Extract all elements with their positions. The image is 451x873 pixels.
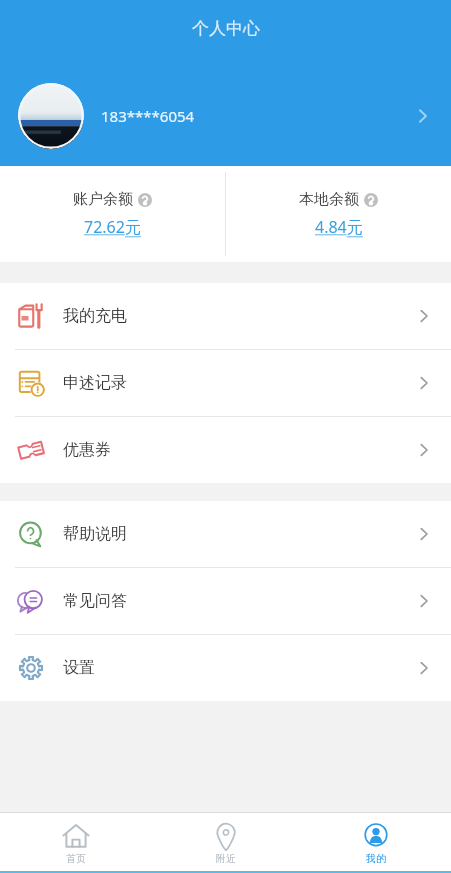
staticText: 首页 [66, 852, 86, 865]
staticText: 常见问答 [63, 591, 127, 611]
button[interactable]: 设置 [0, 635, 451, 701]
other: Profile details [411, 105, 433, 127]
staticText: 72.62元 [84, 216, 141, 238]
staticText: 优惠券 [63, 440, 111, 460]
button[interactable]: 附近 [151, 812, 301, 873]
button[interactable]: 常见问答 [0, 568, 451, 634]
button[interactable]: 183****6054 [0, 66, 451, 166]
button[interactable]: 帮助说明 [0, 501, 451, 567]
staticText: 本地余额 [299, 190, 359, 209]
button[interactable]: 首页 [0, 812, 151, 873]
button[interactable]: 优惠券 [0, 417, 451, 483]
staticText: 4.84元 [315, 216, 363, 238]
other: Help [138, 193, 152, 207]
other: Help [364, 193, 378, 207]
staticText: 我的 [366, 852, 386, 865]
staticText: 183****6054 [101, 106, 195, 126]
button[interactable]: 我的 [301, 812, 451, 873]
button[interactable]: 账户余额 [0, 166, 225, 262]
staticText: 账户余额 [73, 190, 133, 209]
button[interactable]: 本地余额 [226, 166, 451, 262]
staticText: 设置 [63, 658, 95, 678]
staticText: 附近 [216, 852, 236, 865]
button[interactable]: 我的充电 [0, 283, 451, 349]
button[interactable]: 申述记录 [0, 350, 451, 416]
staticText: 帮助说明 [63, 524, 127, 544]
staticText: 个人中心 [192, 18, 260, 39]
staticText: 我的充电 [63, 306, 127, 326]
staticText: 申述记录 [63, 373, 127, 393]
